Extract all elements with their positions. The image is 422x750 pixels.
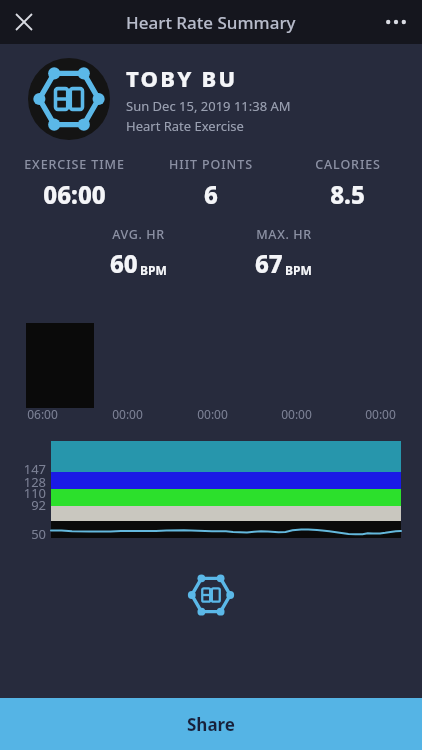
staticText: 00:00	[112, 406, 143, 422]
button[interactable]: HIIT POINTS	[142, 156, 279, 211]
button[interactable]: TOBY BU	[28, 58, 422, 140]
staticText: 92	[31, 496, 46, 514]
staticText: BPM	[285, 262, 312, 278]
staticText: Heart Rate Summary	[126, 11, 296, 34]
button[interactable]: AVG. HR	[77, 226, 200, 280]
staticText: Share	[187, 713, 236, 736]
button[interactable]: Share	[0, 698, 422, 750]
staticText: 60	[110, 247, 138, 280]
staticText: 6	[204, 178, 218, 211]
staticText: EXERCISE TIME	[24, 156, 125, 173]
staticText: AVG. HR	[112, 226, 165, 243]
staticText: Sun Dec 15, 2019 11:38 AM	[126, 97, 291, 115]
button[interactable]: MAX. HR	[222, 226, 345, 280]
staticText: Heart Rate Exercise	[126, 117, 244, 135]
staticText: 8.5	[330, 178, 365, 211]
staticText: CALORIES	[315, 156, 381, 173]
button[interactable]: More options	[374, 0, 418, 44]
button[interactable]: EXERCISE TIME	[6, 156, 142, 211]
button[interactable]: CALORIES	[279, 156, 416, 211]
staticText: 67	[255, 247, 283, 280]
staticText: BPM	[140, 262, 167, 278]
staticText: 06:00	[43, 178, 106, 211]
staticText: 128	[23, 473, 46, 491]
staticText: MAX. HR	[256, 226, 312, 243]
staticText: 00:00	[365, 406, 396, 422]
other: App logo	[187, 571, 235, 619]
staticText: 50	[31, 525, 46, 543]
staticText: 110	[23, 484, 46, 502]
staticText: HIIT POINTS	[169, 156, 253, 173]
staticText: 00:00	[281, 406, 312, 422]
button[interactable]: Close	[2, 0, 46, 44]
staticText: 06:00	[27, 406, 58, 422]
staticText: TOBY BU	[126, 63, 238, 93]
staticText: 147	[23, 460, 46, 478]
staticText: 00:00	[197, 406, 228, 422]
